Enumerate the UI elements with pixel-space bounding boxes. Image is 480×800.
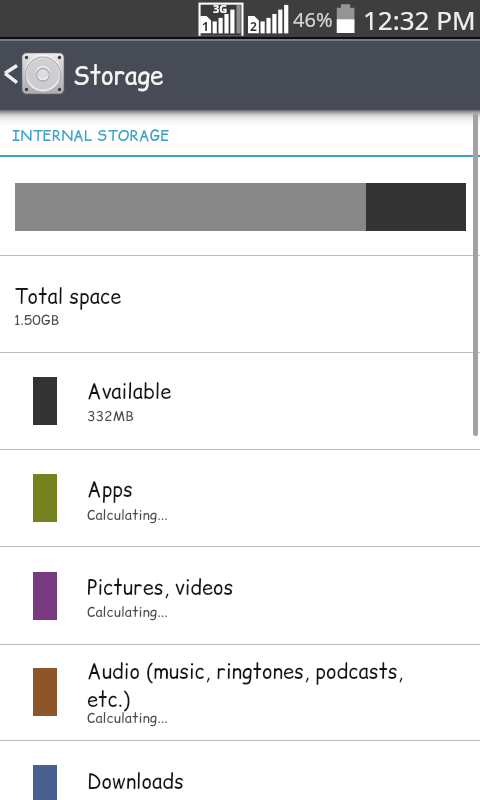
staticText: Storage <box>73 59 164 92</box>
staticText: Pictures, videos <box>87 574 432 602</box>
staticText: 332MB <box>87 406 134 426</box>
button[interactable]: Navigate up <box>0 37 24 110</box>
staticText: Calculating... <box>87 505 168 525</box>
staticText: 3G <box>213 1 228 16</box>
staticText: INTERNAL STORAGE <box>12 125 170 146</box>
staticText: Calculating... <box>87 602 168 622</box>
staticText: Available <box>87 378 432 406</box>
staticText: Total space <box>14 283 122 311</box>
button[interactable]: Pictures, videos <box>0 546 480 644</box>
button[interactable]: Downloads <box>0 740 480 800</box>
button[interactable]: Apps <box>0 449 480 546</box>
staticText: Audio (music, ringtones, podcasts, etc.) <box>87 658 432 714</box>
staticText: Downloads <box>87 768 432 796</box>
staticText: 1 <box>202 18 209 34</box>
button[interactable]: Audio (music, ringtones, podcasts, etc.) <box>0 644 480 740</box>
staticText: Calculating... <box>87 708 168 728</box>
staticText: 1.50GB <box>14 310 60 330</box>
staticText: Apps <box>87 476 432 504</box>
staticText: 2 <box>250 18 257 34</box>
staticText: 12:32 PM <box>363 2 476 37</box>
button[interactable]: Total space <box>0 255 480 352</box>
staticText: 46% <box>293 6 333 33</box>
button[interactable]: Available <box>0 352 480 449</box>
